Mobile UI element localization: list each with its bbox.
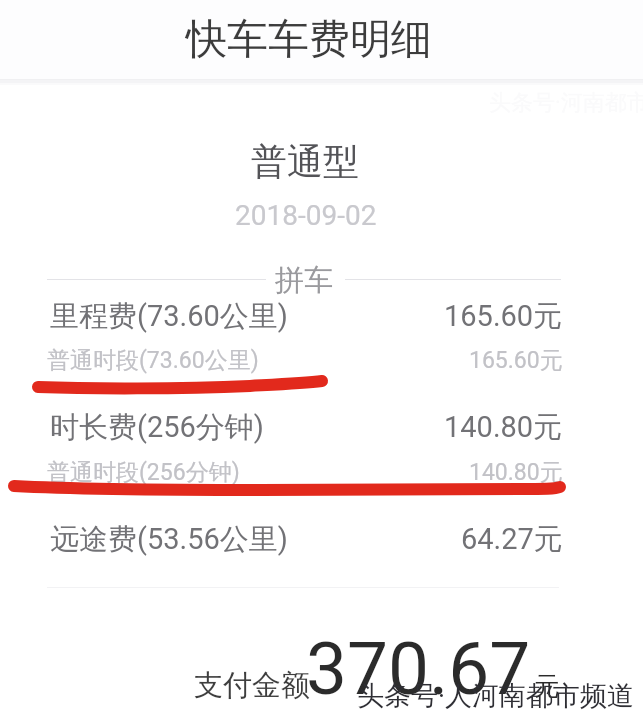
staticText: 远途费(53.56公里)	[50, 521, 288, 558]
staticText: 165.60元	[444, 298, 563, 335]
staticText: 快车车费明细	[186, 14, 432, 66]
staticText: 时长费(256分钟)	[50, 409, 264, 446]
staticText: 140.80元	[444, 409, 563, 446]
staticText: 140.80元	[469, 458, 563, 487]
staticText: 普通时段(256分钟)	[47, 458, 240, 487]
staticText: 头条号·人河南都市频道	[357, 679, 635, 713]
staticText: 64.27元	[461, 521, 563, 558]
staticText: 2018-09-02	[235, 199, 377, 232]
staticText: 里程费(73.60公里)	[50, 298, 288, 335]
button[interactable]: 远途费(53.56公里)	[50, 519, 563, 559]
staticText: 165.60元	[469, 346, 563, 375]
staticText: 普通时段(73.60公里)	[47, 346, 259, 375]
staticText: 拼车	[275, 262, 333, 299]
staticText: 370.67	[306, 626, 531, 712]
other: Hand drawn red underline marks	[0, 0, 643, 715]
staticText: 元	[534, 670, 560, 703]
staticText: 普通型	[251, 139, 359, 184]
button[interactable]: 时长费(256分钟)	[50, 407, 563, 447]
button[interactable]: 里程费(73.60公里)	[50, 296, 563, 336]
button[interactable]: 快车车费明细	[0, 0, 643, 79]
button[interactable]: 支付金额 370.67 元	[190, 630, 565, 710]
staticText: 支付金额	[194, 667, 310, 704]
